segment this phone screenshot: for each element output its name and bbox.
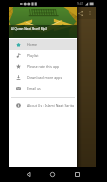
staticText: Home [27,42,37,47]
button[interactable]: Email us [9,83,77,94]
button[interactable]: Please rate this app [9,61,77,72]
button[interactable]: Home [9,39,77,50]
staticText: Al Quran Naat Sharif Mp3 [11,27,47,31]
staticText: Please rate this app [27,64,60,69]
staticText: 9:41 [77,2,84,6]
staticText: Playlist [27,53,39,58]
button[interactable]: Recents [72,169,83,180]
staticText: Email us [27,86,41,91]
button[interactable]: More options [87,10,93,16]
button[interactable]: Home [47,169,58,180]
button[interactable]: Playlist [9,50,77,61]
button[interactable]: Share [77,10,84,17]
staticText: About Us : Islami Naat Sarita Version [27,103,77,108]
button[interactable]: Back [23,169,34,180]
button[interactable]: About Us : Islami Naat Sarita Version [9,100,77,111]
button[interactable]: Download more apps [9,72,77,83]
staticText: Download more apps [27,75,63,80]
